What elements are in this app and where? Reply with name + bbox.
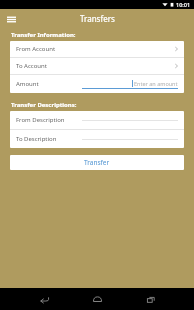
button[interactable]: Recent apps xyxy=(141,289,161,309)
button[interactable]: To Description xyxy=(10,130,184,148)
staticText: From Account xyxy=(16,45,56,53)
staticText: Enter an amount xyxy=(134,80,178,87)
button[interactable]: Back xyxy=(34,289,54,309)
button[interactable]: Amount xyxy=(10,75,184,93)
staticText: Transfer xyxy=(84,158,110,167)
staticText: From Description xyxy=(16,116,65,124)
staticText: To Account xyxy=(16,62,47,70)
button[interactable]: From Account xyxy=(10,41,184,57)
button[interactable]: To Account xyxy=(10,58,184,74)
staticText: Transfers xyxy=(80,13,115,24)
button[interactable]: From Description xyxy=(10,111,184,129)
staticText: Transfer Information: xyxy=(11,31,76,39)
button[interactable]: Open navigation menu xyxy=(3,11,19,27)
staticText: To Description xyxy=(16,135,57,143)
staticText: Amount xyxy=(16,80,39,88)
button[interactable]: Home xyxy=(87,289,107,309)
staticText: 10:01 xyxy=(176,1,191,8)
staticText: Transfer Descriptions: xyxy=(11,101,77,109)
button[interactable]: Transfer xyxy=(10,155,184,170)
